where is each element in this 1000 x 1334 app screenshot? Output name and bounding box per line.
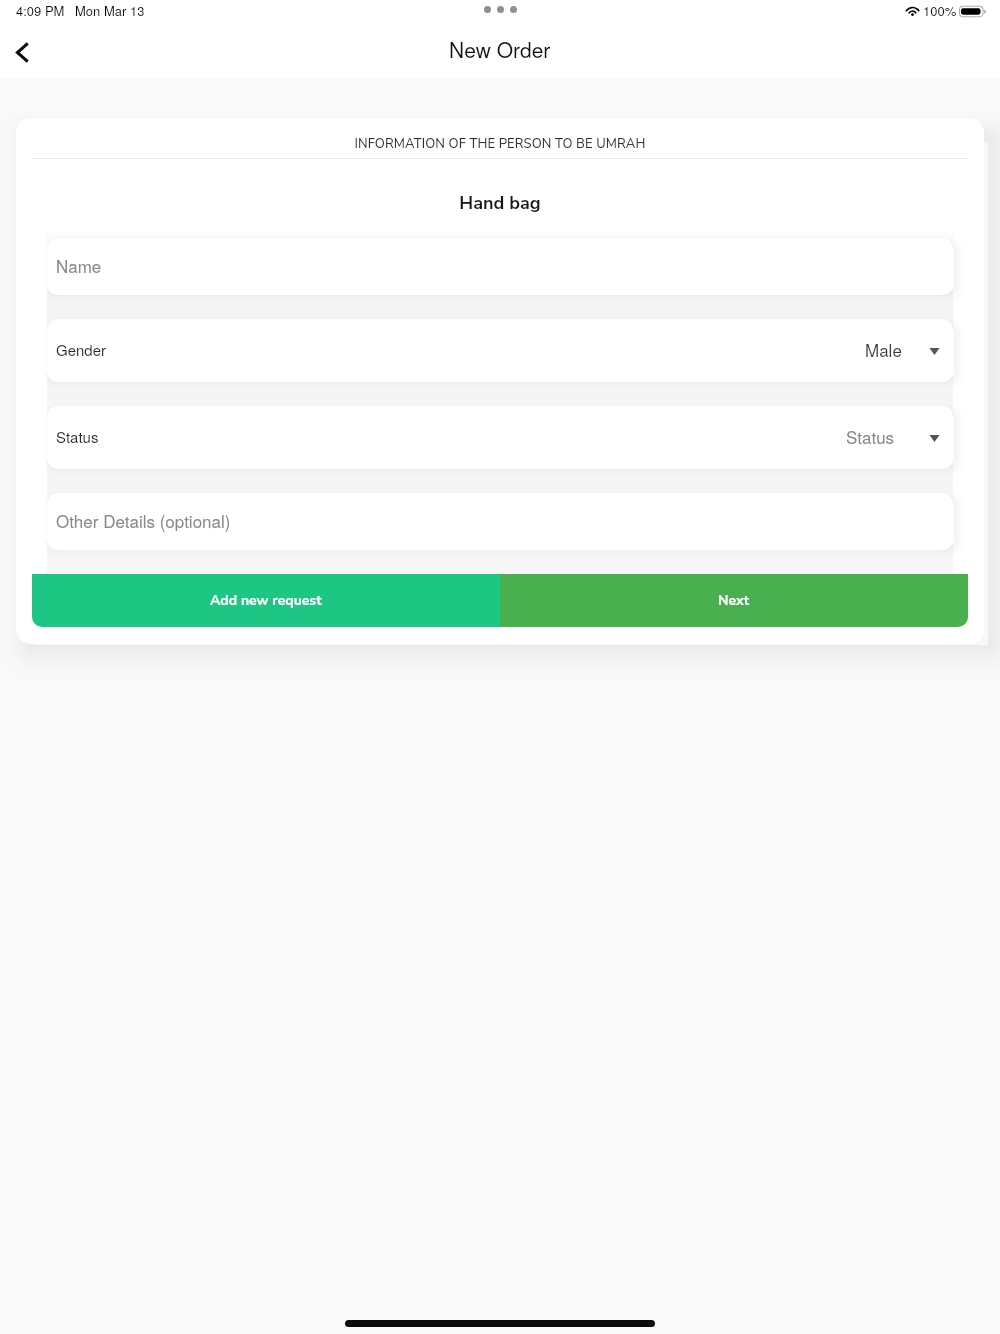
staticText: Male xyxy=(865,337,902,361)
staticText: Next xyxy=(718,591,750,610)
button[interactable]: Add new request xyxy=(32,574,500,627)
staticText: New Order xyxy=(449,34,551,64)
staticText: Name xyxy=(56,253,102,277)
button[interactable]: Back xyxy=(0,26,43,78)
button[interactable]: Status xyxy=(47,406,953,469)
staticText: Status xyxy=(846,424,895,448)
staticText: Mon Mar 13 xyxy=(75,1,145,20)
staticText: INFORMATION OF THE PERSON TO BE UMRAH xyxy=(16,135,984,153)
staticText: Gender xyxy=(56,339,107,360)
staticText: Hand bag xyxy=(16,191,984,216)
button[interactable]: Name xyxy=(47,238,953,295)
staticText: Status xyxy=(56,426,99,447)
other: Battery 100 percent xyxy=(959,5,985,18)
button[interactable]: Next xyxy=(500,574,968,627)
staticText: 4:09 PM xyxy=(16,1,65,20)
button[interactable]: Other Details (optional) xyxy=(47,493,953,550)
staticText: Add new request xyxy=(210,591,322,610)
button[interactable]: Gender xyxy=(47,319,953,382)
other: Wi-Fi xyxy=(904,5,921,16)
staticText: Other Details (optional) xyxy=(56,508,231,532)
staticText: 100% xyxy=(923,1,957,20)
